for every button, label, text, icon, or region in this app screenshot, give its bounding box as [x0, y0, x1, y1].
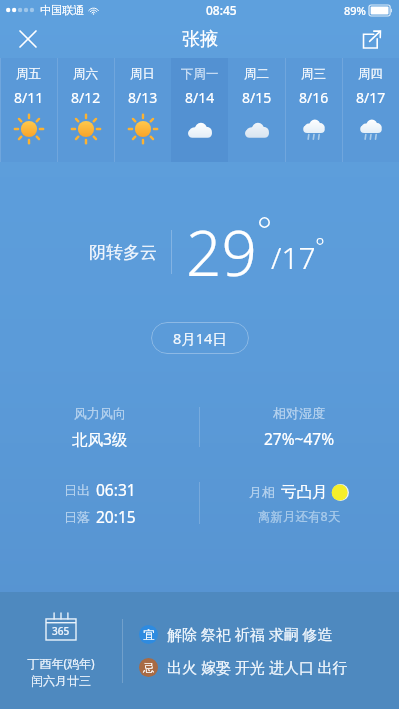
staticText: 丁酉年(鸡年) — [27, 655, 95, 671]
staticText: 忌 — [143, 661, 155, 675]
button[interactable]: 周六 — [57, 58, 114, 162]
staticText: 8月14日 — [173, 328, 227, 348]
staticText: 周五 — [16, 66, 41, 82]
staticText: /17 — [271, 237, 316, 278]
staticText: 周四 — [358, 66, 383, 82]
button[interactable]: 周三 — [285, 58, 342, 162]
staticText: 周三 — [301, 66, 326, 82]
staticText: 365 — [52, 624, 70, 638]
button[interactable]: 周五 — [0, 58, 57, 162]
staticText: 相对湿度 — [273, 405, 325, 421]
staticText: 27%~47% — [264, 428, 335, 449]
staticText: 8/13 — [128, 88, 158, 107]
staticText: 日落 — [64, 509, 90, 525]
staticText: 8/14 — [185, 88, 215, 107]
staticText: 周六 — [73, 66, 98, 82]
staticText: 阴转多云 — [89, 242, 157, 263]
staticText: 8/15 — [242, 88, 272, 107]
button[interactable]: 365 — [0, 592, 399, 709]
staticText: 周二 — [244, 66, 269, 82]
staticText: 89% — [344, 3, 366, 18]
button[interactable]: 周二 — [228, 58, 285, 162]
staticText: 亏凸月 — [281, 482, 328, 502]
staticText: 风力风向 — [74, 405, 126, 421]
button[interactable]: 周四 — [342, 58, 399, 162]
button[interactable]: 8月14日 — [151, 322, 249, 354]
staticText: 20:15 — [96, 506, 136, 527]
staticText: 离新月还有8天 — [258, 508, 341, 525]
button[interactable]: 下周一 — [171, 58, 228, 162]
staticText: 8/16 — [299, 88, 329, 107]
staticText: 下周一 — [181, 66, 219, 82]
staticText: 闰六月廿三 — [31, 673, 91, 688]
staticText: 8/11 — [14, 88, 44, 107]
staticText: 06:31 — [96, 479, 136, 500]
staticText: 张掖 — [182, 28, 218, 51]
staticText: 8/17 — [356, 88, 386, 107]
button[interactable]: Share — [351, 20, 391, 58]
staticText: 北风3级 — [72, 428, 128, 449]
staticText: 中国联通 — [40, 3, 84, 17]
staticText: 宜 — [143, 628, 155, 642]
staticText: 8/12 — [71, 88, 101, 107]
staticText: 出火 嫁娶 开光 进人口 出行 — [167, 657, 348, 677]
staticText: 月相 — [249, 484, 275, 500]
staticText: 日出 — [64, 482, 90, 498]
staticText: 周日 — [130, 66, 155, 82]
button[interactable]: Close — [8, 20, 48, 58]
button[interactable]: 周日 — [114, 58, 171, 162]
staticText: 29 — [186, 210, 257, 294]
staticText: 解除 祭祀 祈福 求嗣 修造 — [167, 624, 333, 644]
staticText: 08:45 — [206, 2, 237, 18]
